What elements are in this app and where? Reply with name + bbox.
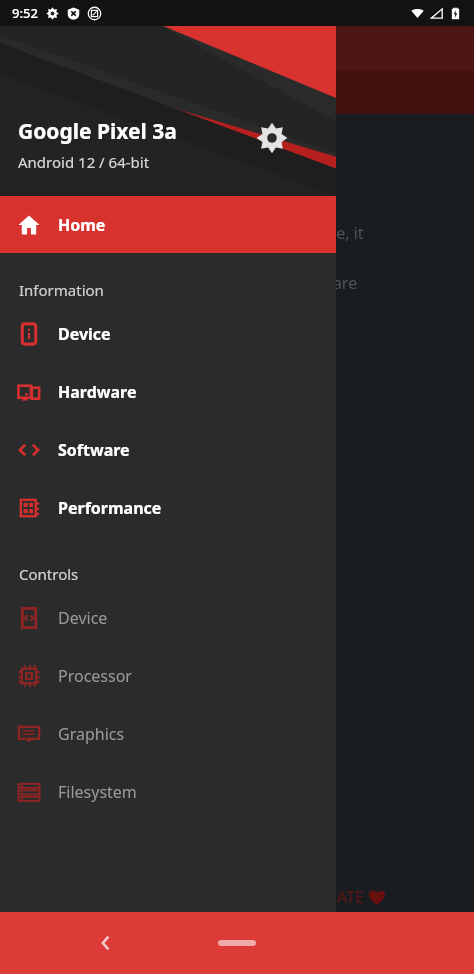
button[interactable]: Hardware	[0, 363, 336, 421]
staticText: Device	[58, 607, 108, 629]
staticText: Home	[58, 214, 106, 236]
staticText: Controls	[19, 564, 79, 584]
staticText: unlock advanced tuning and control!	[22, 437, 297, 459]
staticText: Filesystem	[58, 781, 137, 803]
button[interactable]: DONATE	[300, 886, 388, 908]
staticText: DONATE	[300, 886, 364, 908]
staticText: You can explore exactly which device you…	[22, 272, 358, 294]
staticText: Information	[19, 280, 104, 300]
staticText: 0.8.7.3-git-a4ae0d	[18, 933, 158, 955]
button[interactable]: Device	[0, 589, 336, 647]
button[interactable]: Graphics	[0, 705, 336, 763]
staticText: Device	[58, 323, 111, 345]
button[interactable]: Home	[0, 196, 336, 253]
staticText: Open the navigation drawer from the left	[22, 152, 332, 174]
staticText: is easy — just pick a topic to begin!	[22, 247, 284, 269]
staticText: 9:52	[12, 4, 38, 22]
staticText: If something does not appear, please try	[22, 342, 325, 364]
staticText: Android 12 / 64-bit	[18, 152, 150, 172]
staticText: again later.	[22, 367, 105, 389]
staticText: Hardware	[58, 381, 137, 403]
button[interactable]: Home gesture handle	[218, 940, 256, 946]
staticText: Software	[58, 439, 130, 461]
staticText: To see more information about your devic…	[22, 222, 364, 244]
staticText: Graphics	[58, 723, 125, 745]
button[interactable]: Settings	[250, 116, 294, 160]
button[interactable]: Performance	[0, 479, 336, 537]
button[interactable]: 0.8.7.3-git-a4ae0d	[0, 914, 336, 974]
button[interactable]: Processor	[0, 647, 336, 705]
staticText: Performance	[58, 497, 162, 519]
button[interactable]: Device	[0, 305, 336, 363]
button[interactable]: Filesystem	[0, 763, 336, 821]
staticText: Processor	[58, 665, 132, 687]
button[interactable]: Software	[0, 421, 336, 479]
staticText: Google Pixel 3a	[18, 117, 177, 146]
button[interactable]: Back	[88, 925, 124, 961]
staticText: edge, or with the button at top left!	[22, 177, 287, 199]
